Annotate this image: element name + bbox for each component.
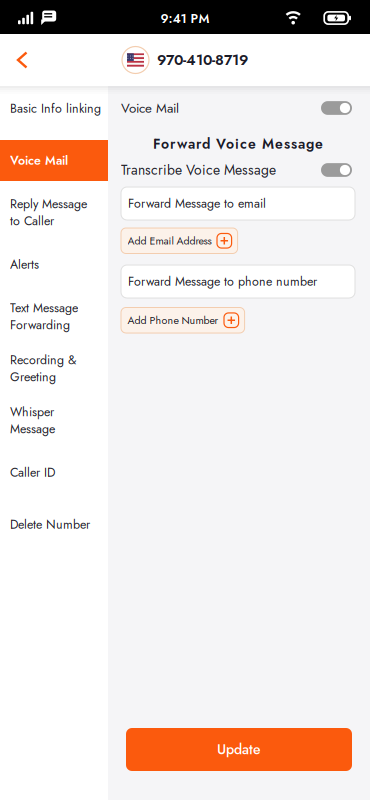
staticText: Text Message Forwarding [10, 299, 78, 334]
button[interactable]: Back [6, 47, 40, 72]
button[interactable]: Reply Message to Caller [0, 192, 108, 233]
button[interactable]: Transcribe Voice Message [321, 163, 352, 177]
staticText: Recording & Greeting [10, 351, 76, 386]
button[interactable]: Voice Mail [0, 140, 108, 181]
staticText: Transcribe Voice Message [121, 160, 276, 180]
button[interactable]: Voice Mail [321, 101, 352, 115]
staticText: Voice Mail [10, 151, 68, 169]
staticText: Forward Voice Message [153, 134, 323, 154]
staticText: Reply Message to Caller [10, 195, 87, 230]
staticText: Add Phone Number [127, 312, 218, 328]
staticText: Whisper Message [10, 403, 55, 438]
staticText: 9:41 PM [160, 9, 209, 28]
staticText: Caller ID [10, 463, 55, 481]
button[interactable]: Add Phone Number [121, 307, 245, 333]
button[interactable]: Recording & Greeting [0, 348, 108, 389]
staticText: Basic Info linking [10, 99, 101, 117]
staticText: Forward Message to email [128, 194, 266, 212]
staticText: Delete Number [10, 515, 90, 533]
staticText: Alerts [10, 255, 39, 273]
button[interactable]: Forward Message to email [121, 187, 355, 220]
staticText: Voice Mail [121, 98, 179, 118]
staticText: Forward Message to phone number [128, 272, 317, 290]
staticText: Add Email Address [127, 233, 211, 248]
button[interactable]: Delete Number [0, 504, 108, 545]
staticText: Update [217, 739, 261, 760]
button[interactable]: Alerts [0, 244, 108, 285]
button[interactable]: Update [126, 728, 352, 771]
button[interactable]: Basic Info linking [0, 88, 108, 129]
button[interactable]: Add Email Address [121, 228, 238, 253]
button[interactable]: Text Message Forwarding [0, 296, 108, 337]
staticText: 970-410-8719 [157, 49, 248, 71]
button[interactable]: Forward Message to phone number [121, 265, 355, 298]
button[interactable]: Whisper Message [0, 400, 108, 441]
button[interactable]: Caller ID [0, 452, 108, 493]
